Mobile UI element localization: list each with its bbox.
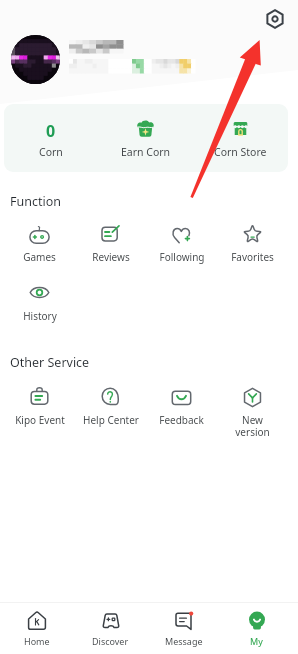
button[interactable]: Settings [264,8,286,30]
staticText: Games [23,250,56,264]
button[interactable]: New version [217,386,288,439]
button[interactable]: Games [4,223,75,264]
button[interactable]: Kipo Event [4,386,75,427]
button[interactable]: Corn Store [193,104,288,172]
button[interactable]: Message [147,603,220,654]
button[interactable]: Discover [74,603,147,654]
button[interactable]: Earn Corn [98,104,193,172]
button[interactable]: History [4,282,75,323]
staticText: Home [24,635,50,647]
button[interactable]: My [220,603,293,654]
staticText: Earn Corn [121,145,171,159]
staticText: Discover [92,635,129,647]
staticText: Favorites [231,250,274,264]
staticText: Message [165,635,203,647]
staticText: History [23,309,57,323]
staticText: Feedback [159,413,204,427]
staticText: 0 [46,120,56,137]
staticText: Other Service [10,354,90,371]
button[interactable]: Help Center [75,386,146,427]
button[interactable]: Home [0,603,74,654]
staticText: Corn Store [214,145,267,159]
staticText: Function [10,193,61,210]
button[interactable]: Feedback [146,386,217,427]
button[interactable]: Following [146,223,217,264]
staticText: New version [235,413,270,439]
staticText: Following [159,250,205,264]
staticText: Reviews [92,250,130,264]
staticText: Corn [39,145,63,159]
button[interactable]: 0 [4,104,98,172]
staticText: My [250,635,263,647]
staticText: Kipo Event [15,413,65,427]
button[interactable]: Favorites [217,223,288,264]
button[interactable]: Reviews [75,223,146,264]
staticText: Help Center [83,413,139,427]
